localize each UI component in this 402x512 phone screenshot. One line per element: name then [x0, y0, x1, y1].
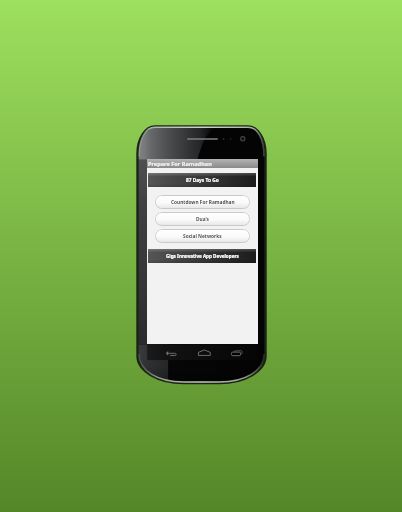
staticText: Countdown For Ramadhan: [171, 199, 235, 206]
staticText: Prepare For Ramadhan: [148, 160, 212, 168]
button[interactable]: 87 Days To Go: [148, 173, 256, 187]
button[interactable]: Social Networks: [155, 229, 250, 243]
button[interactable]: Countdown For Ramadhan: [155, 195, 250, 209]
staticText: Gigs Innovative App Developers: [166, 253, 239, 259]
button[interactable]: Dua's: [155, 212, 250, 226]
staticText: Dua's: [196, 216, 209, 223]
button[interactable]: Gigs Innovative App Developers: [148, 249, 256, 263]
staticText: Social Networks: [183, 233, 222, 240]
staticText: 87 Days To Go: [186, 177, 219, 184]
